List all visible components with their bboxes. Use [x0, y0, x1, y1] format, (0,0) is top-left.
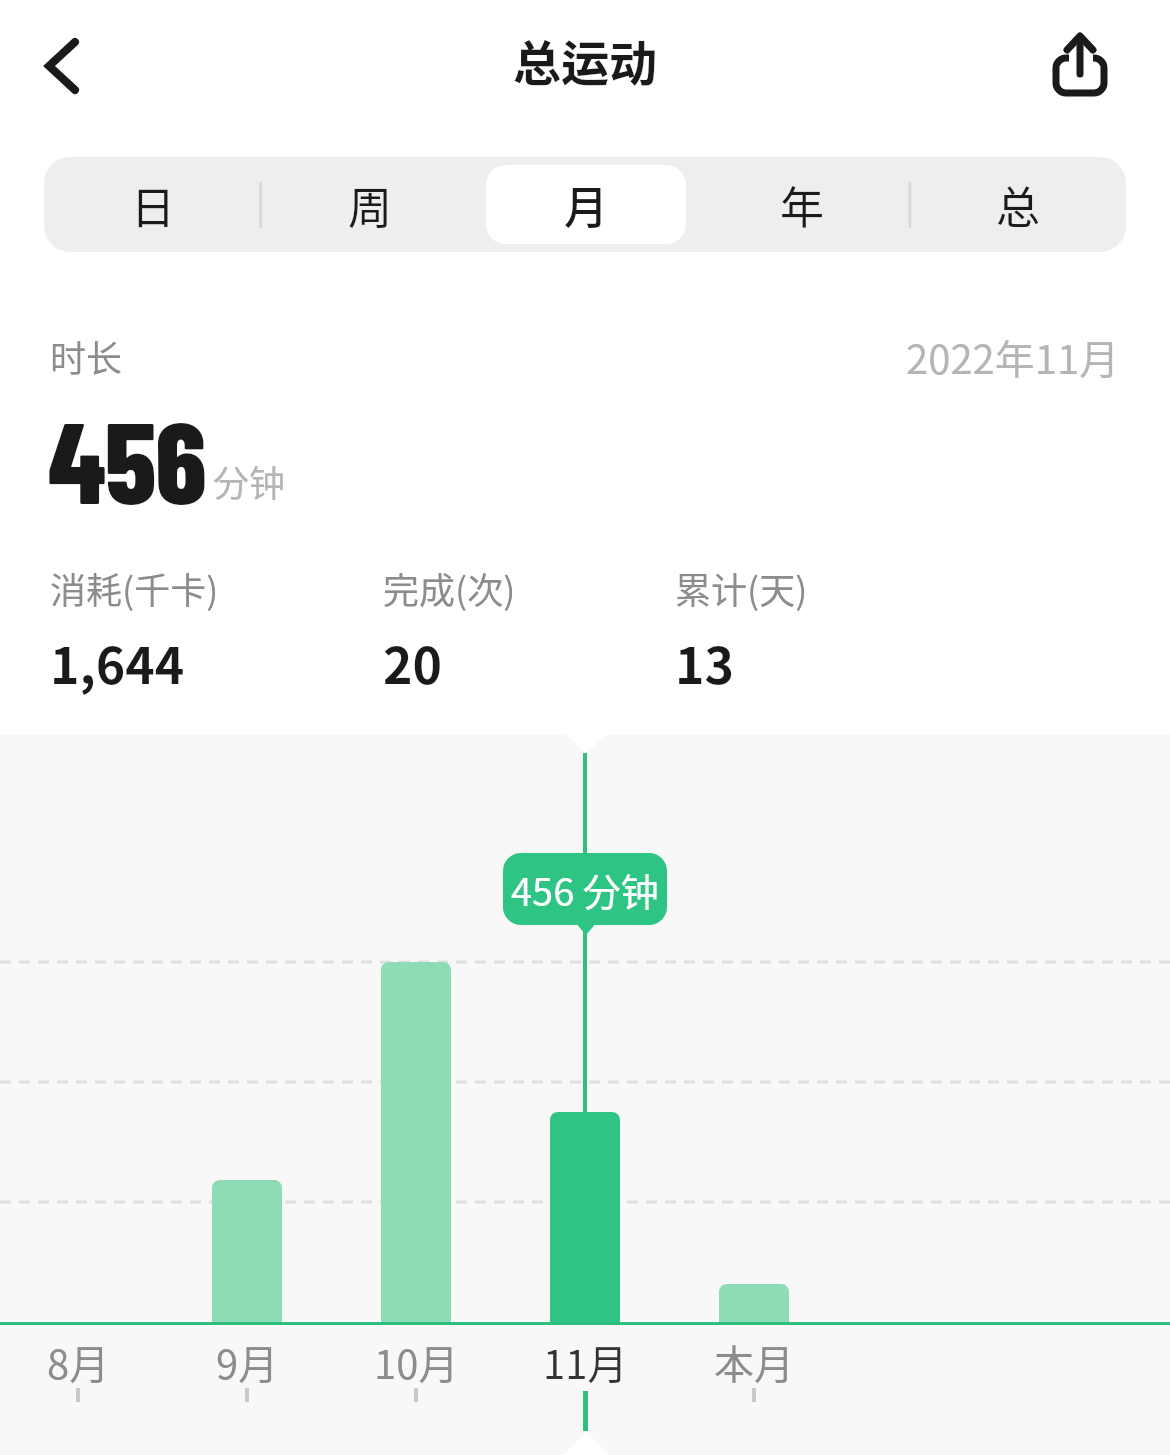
- staticText: 456 分钟: [511, 862, 659, 917]
- staticText: 累计(天): [675, 562, 808, 614]
- button[interactable]: 10月: [346, 1333, 486, 1385]
- button[interactable]: 9月: [177, 1333, 317, 1385]
- button[interactable]: 月: [478, 157, 694, 252]
- staticText: 本月: [714, 1333, 794, 1385]
- button[interactable]: 8月: [8, 1333, 148, 1385]
- button[interactable]: 11月: [515, 1333, 655, 1385]
- button[interactable]: 本月: [684, 1333, 824, 1385]
- staticText: 时长: [50, 330, 123, 382]
- staticText: 周: [348, 173, 392, 237]
- staticText: 完成(次): [383, 562, 516, 614]
- staticText: 年: [780, 173, 824, 237]
- staticText: 20: [383, 626, 442, 698]
- staticText: 消耗(千卡): [50, 562, 219, 614]
- button[interactable]: 周: [261, 157, 478, 252]
- staticText: 8月: [47, 1333, 110, 1385]
- staticText: 2022年11月: [906, 328, 1120, 386]
- staticText: 10月: [374, 1333, 459, 1385]
- button[interactable]: 456 分钟: [503, 853, 667, 925]
- staticText: 日: [131, 173, 175, 237]
- staticText: 分钟: [213, 455, 286, 507]
- staticText: 总运动: [513, 25, 658, 95]
- staticText: 11月: [543, 1333, 628, 1385]
- button[interactable]: 总: [910, 157, 1126, 252]
- staticText: 13: [675, 626, 734, 698]
- staticText: 月: [564, 173, 608, 237]
- button[interactable]: [28, 31, 98, 101]
- staticText: 总: [996, 173, 1040, 237]
- button[interactable]: [1043, 28, 1119, 104]
- staticText: 1,644: [50, 626, 185, 698]
- staticText: 9月: [216, 1333, 279, 1385]
- button[interactable]: 年: [694, 157, 910, 252]
- button[interactable]: 日: [44, 157, 261, 252]
- staticText: 456: [48, 390, 206, 527]
